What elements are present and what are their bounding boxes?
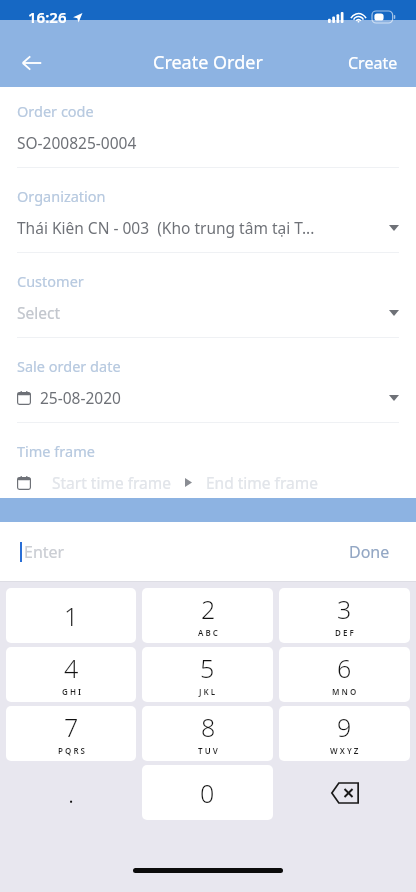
staticText: Thái Kiên CN - 003 (Kho trung tâm tại T.…	[17, 217, 383, 238]
button[interactable]: Time frame	[0, 441, 416, 493]
staticText: Select	[17, 302, 383, 323]
staticText: W X Y Z	[330, 745, 359, 756]
staticText: Done	[349, 541, 390, 563]
button[interactable]: 6	[279, 647, 410, 702]
staticText: Create Order	[153, 50, 263, 75]
button[interactable]: Organization	[0, 186, 416, 271]
staticText: Sale order date	[17, 356, 121, 376]
staticText: J K L	[199, 686, 216, 697]
staticText: 3	[337, 592, 352, 626]
staticText: .	[68, 776, 75, 810]
staticText: Organization	[17, 186, 106, 206]
button[interactable]: Back	[10, 41, 54, 85]
staticText: D E F	[335, 627, 354, 638]
button[interactable]: 4	[6, 647, 136, 702]
button[interactable]: 7	[6, 706, 136, 761]
staticText: End time frame	[206, 472, 318, 493]
staticText: Enter	[24, 541, 343, 563]
button[interactable]: Done	[343, 533, 396, 571]
staticText: 2	[201, 592, 216, 626]
button[interactable]: .	[6, 765, 136, 820]
staticText: G H I	[62, 686, 81, 697]
button[interactable]: 2	[142, 588, 273, 643]
staticText: P Q R S	[58, 745, 85, 756]
staticText: 9	[337, 710, 352, 744]
staticText: 5	[200, 651, 215, 685]
staticText: 8	[201, 710, 216, 744]
staticText: SO-200825-0004	[17, 132, 399, 153]
button[interactable]: 9	[279, 706, 410, 761]
button[interactable]: Customer	[0, 271, 416, 356]
button[interactable]: 3	[279, 588, 410, 643]
staticText: 25-08-2020	[40, 387, 383, 408]
staticText: 16:26	[28, 7, 67, 27]
staticText: 1	[64, 599, 79, 633]
button[interactable]: 8	[142, 706, 273, 761]
staticText: 4	[64, 651, 79, 685]
staticText: Time frame	[17, 441, 95, 461]
staticText: A B C	[198, 627, 218, 638]
staticText: M N O	[332, 686, 357, 697]
button[interactable]: Order code	[0, 101, 416, 186]
button[interactable]: Delete	[279, 765, 410, 820]
staticText: Start time frame	[52, 472, 172, 493]
button[interactable]: 5	[142, 647, 273, 702]
button[interactable]: Sale order date	[0, 356, 416, 441]
staticText: 0	[200, 776, 215, 810]
staticText: 7	[64, 710, 79, 744]
staticText: 6	[337, 651, 352, 685]
button[interactable]: 0	[142, 765, 273, 820]
staticText: Customer	[17, 271, 84, 291]
staticText: Order code	[17, 101, 94, 121]
staticText: Create	[348, 52, 398, 74]
button[interactable]: Create	[338, 42, 408, 84]
button[interactable]: 1	[6, 588, 136, 643]
staticText: T U V	[198, 745, 218, 756]
